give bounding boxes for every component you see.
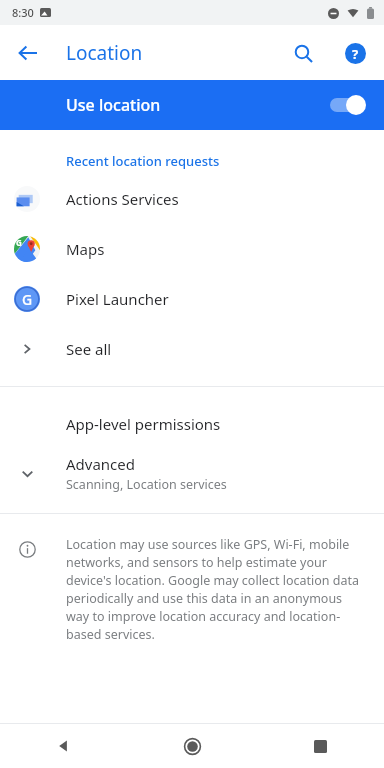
staticText: Recent location requests — [66, 152, 220, 170]
button[interactable]: G — [0, 224, 384, 274]
button[interactable]: See all — [0, 324, 384, 374]
staticText: 8:30 — [12, 5, 34, 20]
staticText: Actions Services — [66, 189, 179, 209]
staticText: ? — [352, 45, 359, 63]
staticText: Use location — [66, 94, 161, 116]
staticText: G — [22, 290, 33, 309]
staticText: Location may use sources like GPS, Wi-Fi… — [66, 536, 364, 643]
button[interactable]: Recents — [256, 724, 384, 768]
staticText: Advanced — [66, 454, 136, 474]
button[interactable]: Actions Services — [0, 174, 384, 224]
button[interactable]: Advanced — [0, 447, 384, 499]
staticText: Pixel Launcher — [66, 289, 169, 309]
button[interactable]: G — [0, 274, 384, 324]
button[interactable]: Back — [0, 724, 128, 768]
staticText: G — [16, 237, 22, 248]
button[interactable]: Home — [128, 724, 256, 768]
staticText: See all — [66, 339, 112, 359]
button[interactable]: Back — [10, 35, 46, 71]
button[interactable]: Use location — [0, 80, 384, 130]
staticText: App-level permissions — [66, 414, 221, 434]
button[interactable]: Help — [340, 38, 370, 68]
staticText: Location — [66, 40, 143, 66]
button[interactable]: Search — [288, 38, 318, 68]
staticText: Scanning, Location services — [66, 476, 227, 493]
staticText: Maps — [66, 239, 105, 259]
button[interactable]: App-level permissions — [0, 401, 384, 447]
